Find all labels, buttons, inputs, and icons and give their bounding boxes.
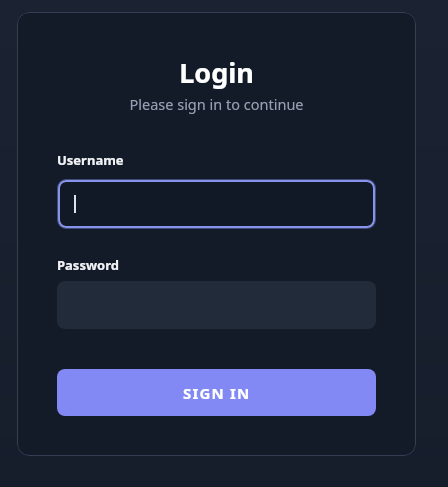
button[interactable]: SIGN IN xyxy=(57,369,376,416)
staticText: Please sign in to continue xyxy=(129,94,304,114)
staticText: Username xyxy=(57,151,124,167)
staticText: Login xyxy=(179,54,254,90)
button[interactable] xyxy=(58,180,375,228)
staticText: SIGN IN xyxy=(183,383,251,403)
staticText: Password xyxy=(57,256,119,272)
